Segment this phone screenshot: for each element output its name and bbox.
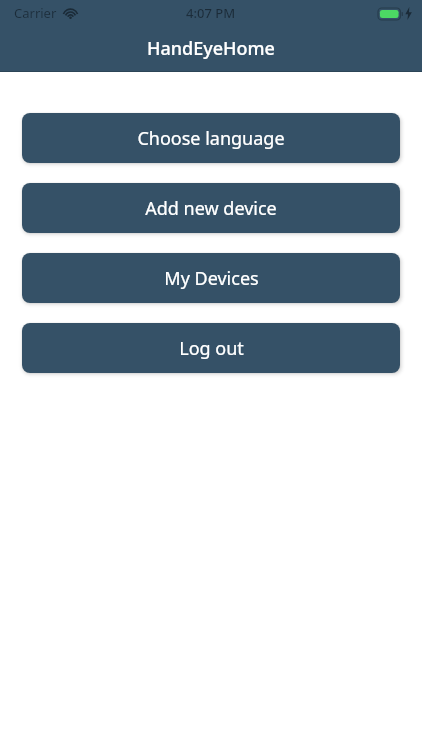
button[interactable]: Add new device [22,183,400,233]
button[interactable]: Log out [22,323,400,373]
staticText: Choose language [137,126,285,151]
button[interactable]: Choose language [22,113,400,163]
staticText: My Devices [164,266,259,291]
staticText: Carrier [14,4,57,22]
staticText: Add new device [145,196,277,221]
staticText: Log out [179,336,244,361]
button[interactable]: My Devices [22,253,400,303]
staticText: HandEyeHome [147,36,275,61]
staticText: 4:07 PM [186,4,236,22]
